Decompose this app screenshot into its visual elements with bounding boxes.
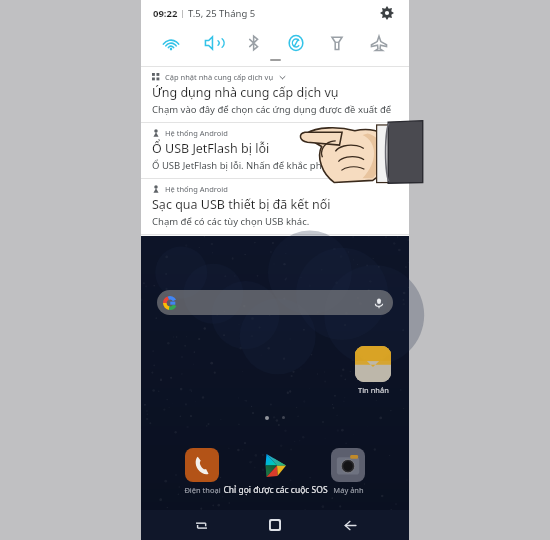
button[interactable]: Hệ thống Android [141, 123, 409, 178]
staticText: Chạm vào đây để chọn các ứng dụng được đ… [152, 103, 399, 116]
button[interactable]: Máy ảnh [319, 448, 377, 495]
button[interactable]: Gần đây [186, 510, 216, 540]
staticText: 09:22 [153, 7, 178, 20]
button[interactable]: Màn hình chính [260, 510, 290, 540]
button[interactable]: Bluetooth [237, 26, 271, 60]
button[interactable]: Chế độ máy bay [362, 26, 396, 60]
staticText: T.5, 25 Tháng 5 [188, 7, 256, 20]
staticText: Chạm để có các tùy chọn USB khác. [152, 215, 310, 228]
button[interactable]: Âm lượng [196, 26, 230, 60]
button[interactable]: Hệ thống Android [141, 179, 409, 234]
other: Con trỏ bàn tay [296, 112, 424, 184]
button[interactable]: Cập nhật nhà cung cấp dịch vụ [141, 67, 409, 122]
staticText: Hệ thống Android [165, 128, 228, 138]
staticText: Ứng dụng nhà cung cấp dịch vụ [152, 84, 339, 101]
button[interactable]: Wi-Fi [154, 26, 188, 60]
staticText: Ổ USB JetFlash bị lỗi [152, 140, 270, 157]
button[interactable]: Cài đặt [377, 3, 397, 23]
button[interactable]: CHẶN THÔNG BÁO [247, 235, 334, 236]
button[interactable] [246, 448, 304, 485]
button[interactable]: Quay lại [335, 510, 365, 540]
button[interactable]: Tin nhắn [347, 346, 399, 395]
staticText: Máy ảnh [333, 485, 364, 495]
button[interactable]: Tìm kiếm Google [157, 290, 393, 315]
button[interactable]: Đồng bộ [279, 26, 313, 60]
button[interactable]: Điện thoại [173, 448, 231, 495]
staticText: Tin nhắn [358, 385, 389, 395]
button[interactable]: Đèn pin [320, 26, 354, 60]
staticText: Chỉ gọi được các cuộc SOS [223, 484, 328, 496]
staticText: Sạc qua USB thiết bị đã kết nối [152, 196, 331, 213]
staticText: Cập nhật nhà cung cấp dịch vụ [165, 72, 274, 82]
staticText: Ổ USB JetFlash bị lỗi. Nhấn để khắc phục… [152, 159, 335, 172]
staticText: Điện thoại [184, 485, 221, 495]
staticText: Hệ thống Android [165, 184, 228, 194]
